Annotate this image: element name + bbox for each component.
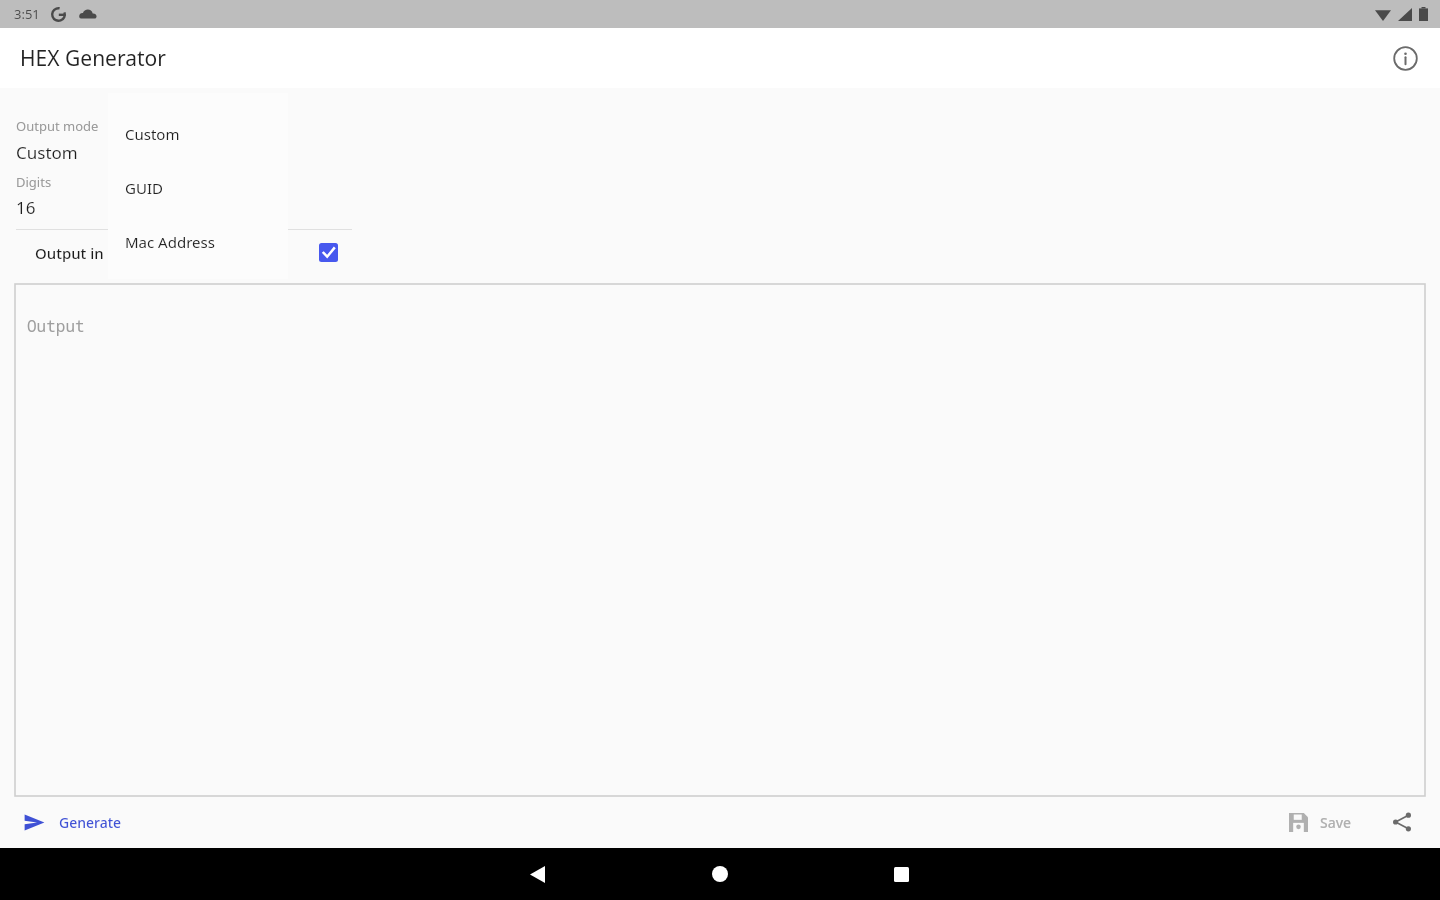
staticText: Save: [1320, 813, 1352, 832]
button[interactable]: Custom: [108, 107, 288, 161]
button[interactable]: Mac Address: [108, 215, 288, 269]
button[interactable]: Info: [1384, 37, 1426, 79]
button[interactable]: Generate: [18, 806, 128, 839]
button[interactable]: GUID: [108, 161, 288, 215]
staticText: Custom: [125, 124, 180, 144]
staticText: Output: [27, 315, 85, 337]
button[interactable]: Share: [1386, 806, 1418, 838]
button[interactable]: Digits: [0, 173, 1440, 219]
button[interactable]: Save: [1283, 807, 1358, 838]
staticText: HEX Generator: [20, 44, 166, 73]
button[interactable]: Back: [512, 849, 562, 899]
button[interactable]: Home: [695, 849, 745, 899]
staticText: Output in uppercase: [35, 243, 319, 263]
button[interactable]: Recents: [876, 849, 926, 899]
staticText: Mac Address: [125, 232, 215, 252]
staticText: Generate: [59, 813, 122, 832]
staticText: GUID: [125, 178, 163, 198]
button[interactable]: Output mode: [0, 117, 1440, 164]
staticText: 3:51: [14, 5, 40, 23]
staticText: 16: [16, 196, 36, 219]
button[interactable]: Output in uppercase: [16, 230, 338, 275]
staticText: Output mode: [16, 117, 99, 135]
staticText: Custom: [16, 141, 78, 164]
staticText: Digits: [16, 173, 52, 191]
